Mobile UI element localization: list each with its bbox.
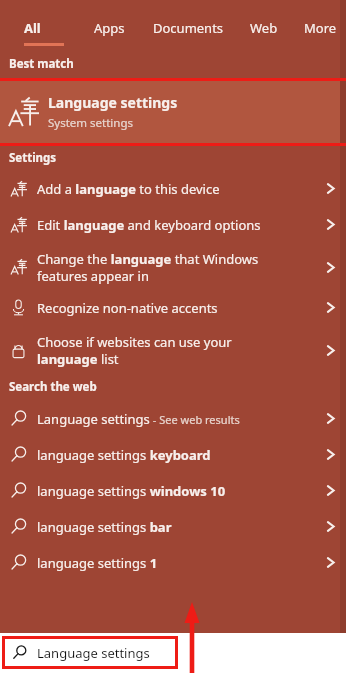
button[interactable]: Choose if websites can use your language… — [0, 327, 346, 373]
staticText: Recognize non-native accents — [37, 299, 218, 317]
button[interactable]: Add a language to this device — [0, 172, 346, 205]
button[interactable]: Language settings — [0, 81, 340, 143]
button[interactable]: More — [304, 19, 338, 46]
button[interactable]: Web — [250, 19, 278, 46]
button[interactable]: All — [24, 19, 64, 46]
staticText: - See web results — [150, 412, 240, 427]
staticText: Change the language that Windows feature… — [37, 250, 259, 285]
staticText: Edit language and keyboard options — [37, 216, 261, 234]
staticText: Search the web — [9, 379, 97, 395]
staticText: Language settings — [37, 644, 150, 662]
staticText: language settings 1 — [37, 554, 158, 572]
staticText: language settings bar — [37, 518, 172, 536]
button[interactable]: Edit language and keyboard options — [0, 208, 346, 241]
staticText: language settings keyboard — [37, 446, 211, 464]
button[interactable]: Language settings - See web results — [0, 402, 346, 435]
button[interactable]: Language settings — [2, 636, 178, 669]
staticText: language settings windows 10 — [37, 482, 226, 500]
staticText: More — [304, 19, 337, 37]
staticText: System settings — [48, 115, 134, 131]
button[interactable]: Change the language that Windows feature… — [0, 244, 346, 290]
staticText: Apps — [94, 19, 125, 37]
button[interactable]: Apps — [94, 19, 125, 46]
button[interactable]: language settings 1 — [0, 546, 346, 579]
staticText: Choose if websites can use your language… — [37, 333, 232, 368]
staticText: Best match — [9, 56, 74, 72]
button[interactable]: language settings windows 10 — [0, 474, 346, 507]
staticText: Language settings — [37, 410, 150, 428]
staticText: Settings — [9, 150, 57, 166]
button[interactable]: language settings keyboard — [0, 438, 346, 471]
button[interactable]: Documents — [153, 19, 224, 46]
button[interactable]: Recognize non-native accents — [0, 291, 346, 324]
staticText: All — [24, 19, 41, 37]
staticText: Documents — [153, 19, 224, 37]
staticText: Language settings — [48, 93, 178, 112]
staticText: Add a language to this device — [37, 180, 220, 198]
button[interactable]: language settings bar — [0, 510, 346, 543]
staticText: Web — [250, 19, 278, 37]
